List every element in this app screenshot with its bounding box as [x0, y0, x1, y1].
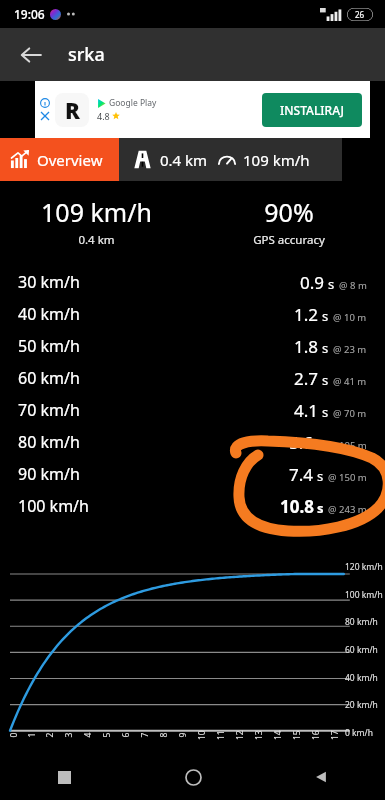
staticText: Google Play — [109, 97, 157, 109]
staticText: 80 km/h — [345, 616, 378, 628]
staticText: GPS accuracy — [253, 232, 325, 248]
staticText: 14 — [272, 730, 284, 740]
staticText: 19:06 — [14, 6, 45, 22]
staticText: @ 8 m — [339, 279, 367, 292]
staticText: s — [317, 435, 324, 453]
staticText: 0.4 km — [78, 232, 115, 248]
button[interactable]: R — [35, 81, 370, 138]
staticText: 12 — [234, 730, 246, 740]
staticText: 5.6 — [289, 431, 314, 454]
button[interactable]: 90 km/h — [0, 458, 385, 490]
staticText: 26 — [355, 9, 365, 20]
staticText: srka — [68, 42, 105, 67]
button[interactable]: 70 km/h — [0, 394, 385, 426]
staticText: @ 23 m — [333, 343, 367, 356]
staticText: 0 — [7, 732, 19, 737]
staticText: 0.9 — [300, 271, 325, 294]
staticText: s — [328, 275, 335, 293]
staticText: 120 km/h — [345, 561, 383, 573]
staticText: 70 km/h — [18, 399, 80, 421]
staticText: 4.8 — [97, 110, 110, 122]
staticText: 80 km/h — [18, 431, 80, 453]
staticText: s — [317, 499, 324, 517]
staticText: 3 — [62, 732, 74, 737]
staticText: 20 km/h — [345, 699, 378, 711]
staticText: R — [65, 95, 80, 125]
staticText: Overview — [37, 150, 103, 170]
button[interactable]: Home — [129, 754, 257, 800]
staticText: 100 km/h — [345, 589, 383, 601]
staticText: s — [322, 339, 329, 357]
button[interactable]: Recents — [0, 754, 129, 800]
staticText: 1 — [25, 732, 37, 737]
staticText: 40 km/h — [345, 672, 378, 684]
staticText: 15 — [291, 730, 303, 740]
staticText: 60 km/h — [18, 367, 80, 389]
staticText: 10 — [196, 730, 208, 740]
staticText: 1.8 — [294, 335, 319, 358]
staticText: @ 150 m — [328, 471, 367, 484]
staticText: @ 41 m — [333, 375, 367, 388]
button[interactable]: 30 km/h — [0, 266, 385, 298]
staticText: 11 — [215, 730, 227, 740]
button[interactable]: Back — [9, 33, 53, 77]
staticText: 109 km/h — [243, 150, 310, 170]
button[interactable]: 50 km/h — [0, 330, 385, 362]
staticText: 0.4 km — [160, 150, 208, 170]
button[interactable]: 40 km/h — [0, 298, 385, 330]
staticText: 1.2 — [294, 303, 319, 326]
button[interactable]: INSTALIRAJ — [262, 93, 362, 127]
button[interactable]: Overview — [0, 138, 119, 181]
staticText: 17 — [329, 730, 341, 740]
staticText: 9 — [176, 732, 188, 737]
staticText: 90% — [264, 195, 314, 229]
staticText: 8 — [157, 732, 169, 737]
staticText: 6 — [119, 732, 131, 737]
staticText: 2.7 — [294, 367, 319, 390]
staticText: 60 km/h — [345, 644, 378, 656]
staticText: 10.8 — [280, 495, 314, 518]
staticText: 16 — [310, 730, 322, 740]
staticText: s — [322, 307, 329, 325]
button[interactable]: Back — [257, 754, 385, 800]
staticText: 5 — [100, 732, 112, 737]
staticText: 30 km/h — [18, 271, 80, 293]
staticText: 7.4 — [289, 463, 314, 486]
staticText: @ 105 m — [328, 439, 367, 452]
staticText: 100 km/h — [18, 495, 89, 517]
staticText: 109 km/h — [41, 195, 152, 229]
staticText: 4.1 — [294, 399, 319, 422]
button[interactable]: 80 km/h — [0, 426, 385, 458]
staticText: @ 70 m — [333, 407, 367, 420]
button[interactable]: 100 km/h — [0, 490, 385, 522]
staticText: INSTALIRAJ — [280, 102, 345, 118]
staticText: 7 — [138, 732, 150, 737]
staticText: s — [317, 467, 324, 485]
staticText: @ 243 m — [328, 503, 367, 516]
staticText: s — [322, 403, 329, 421]
staticText: @ 10 m — [333, 311, 367, 324]
staticText: 0 km/h — [345, 727, 373, 739]
staticText: 2 — [43, 732, 55, 737]
staticText: 50 km/h — [18, 335, 80, 357]
button[interactable]: 0.4 km — [119, 138, 342, 181]
staticText: 90 km/h — [18, 463, 80, 485]
staticText: 4 — [81, 732, 93, 737]
staticText: 13 — [253, 730, 265, 740]
staticText: s — [322, 371, 329, 389]
staticText: 40 km/h — [18, 303, 80, 325]
button[interactable]: 60 km/h — [0, 362, 385, 394]
